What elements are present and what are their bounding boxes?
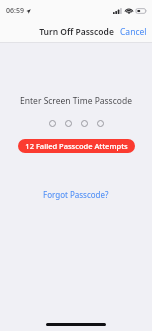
button[interactable]: Forgot Passcode? bbox=[39, 187, 113, 202]
staticText: 06:59 bbox=[6, 6, 24, 16]
staticText: Turn Off Passcode bbox=[39, 26, 114, 38]
staticText: Forgot Passcode? bbox=[43, 189, 109, 200]
staticText: Enter Screen Time Passcode bbox=[0, 95, 152, 107]
staticText: 12 Failed Passcode Attempts bbox=[25, 141, 128, 151]
staticText: Cancel bbox=[120, 26, 147, 38]
button[interactable]: Cancel bbox=[115, 24, 152, 40]
button[interactable]: 12 Failed Passcode Attempts bbox=[18, 139, 135, 153]
